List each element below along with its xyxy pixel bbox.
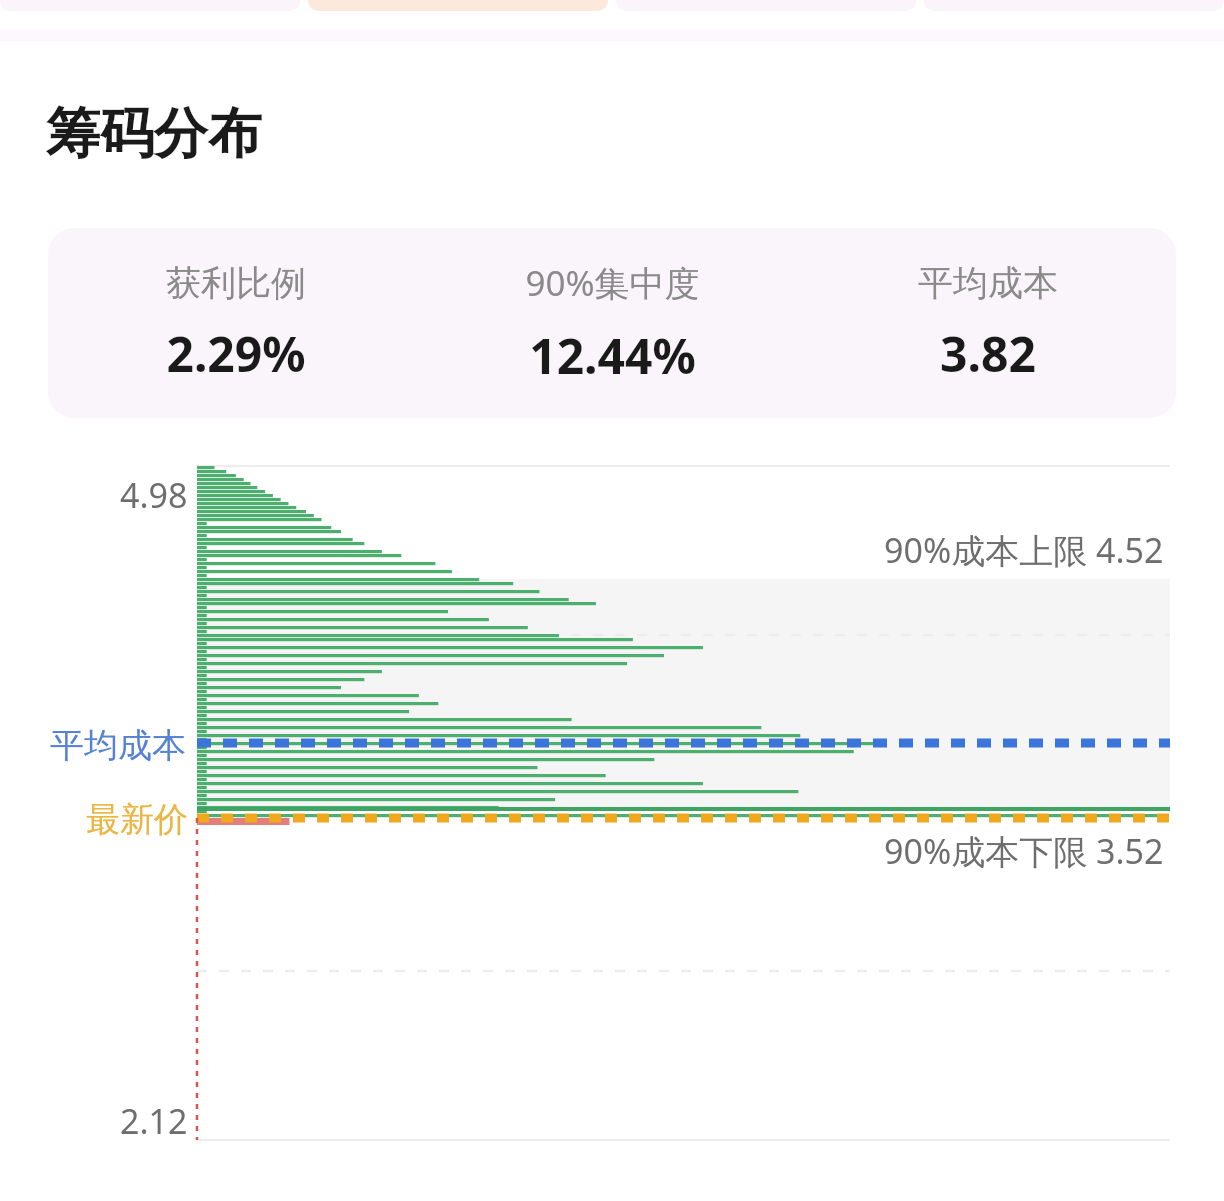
staticText: 2.29% (166, 321, 306, 386)
button[interactable] (308, 0, 608, 11)
staticText: 筹码分布 (46, 100, 262, 168)
staticText: 2.12 (120, 1098, 188, 1144)
button[interactable]: 获利比例 (48, 228, 1176, 418)
other: 筹码分布图 (0, 440, 1224, 1160)
staticText: 平均成本 (50, 724, 186, 767)
staticText: 90%成本上限 4.52 (884, 527, 1164, 573)
staticText: 3.82 (940, 321, 1036, 386)
staticText: 平均成本 (918, 261, 1058, 305)
staticText: 获利比例 (166, 261, 306, 305)
staticText: 12.44% (529, 323, 696, 388)
staticText: 90%成本下限 3.52 (884, 828, 1164, 874)
staticText: 90%集中度 (525, 259, 700, 307)
staticText: 4.98 (120, 472, 188, 518)
staticText: 最新价 (86, 798, 188, 841)
